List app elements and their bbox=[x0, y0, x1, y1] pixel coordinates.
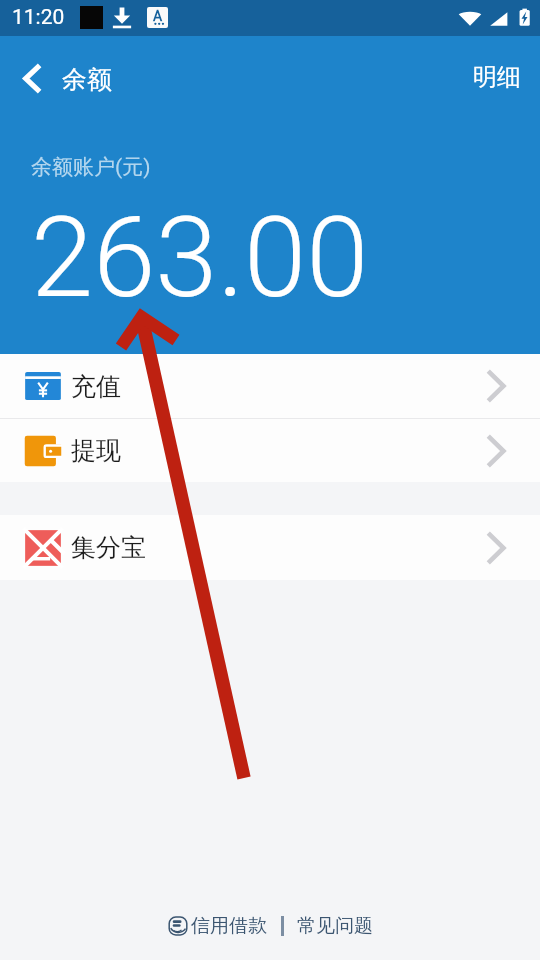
staticText: 常见问题 bbox=[297, 914, 373, 938]
staticText: 11:20 bbox=[12, 5, 65, 30]
button[interactable]: 信用借款 bbox=[167, 914, 267, 938]
staticText: 信用借款 bbox=[191, 914, 267, 938]
staticText: 263.00 bbox=[31, 192, 369, 323]
button[interactable]: 明细 bbox=[466, 49, 528, 99]
button[interactable]: 集分宝 bbox=[0, 515, 540, 580]
staticText: A bbox=[153, 8, 163, 24]
staticText: 充值 bbox=[71, 371, 121, 402]
button[interactable]: 充值 bbox=[0, 354, 540, 418]
staticText: 余额 bbox=[62, 64, 112, 95]
button[interactable]: 常见问题 bbox=[297, 914, 373, 938]
staticText: 明细 bbox=[473, 62, 521, 92]
button[interactable]: Back bbox=[10, 52, 54, 96]
staticText: 提现 bbox=[71, 435, 121, 466]
staticText: 集分宝 bbox=[71, 532, 146, 563]
button[interactable]: 提现 bbox=[0, 419, 540, 482]
staticText: 余额账户(元) bbox=[31, 154, 151, 180]
